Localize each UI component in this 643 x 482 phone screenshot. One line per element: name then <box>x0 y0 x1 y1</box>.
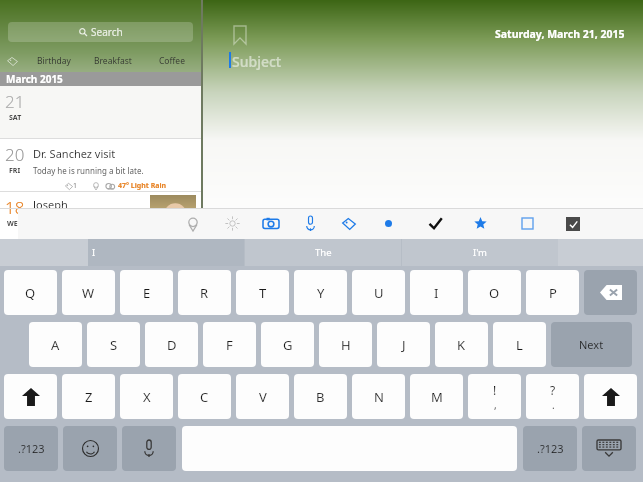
staticText: Today he is running a bit late. <box>33 165 144 176</box>
button[interactable]: H <box>319 322 372 367</box>
staticText: W <box>82 284 95 302</box>
staticText: X <box>143 388 151 406</box>
button[interactable]: I <box>410 270 463 315</box>
button[interactable]: Y <box>294 270 347 315</box>
button[interactable]: Star <box>465 208 495 239</box>
button[interactable]: Checkbox checked <box>558 208 588 239</box>
staticText: 1 <box>73 181 78 191</box>
button[interactable]: Dictation <box>122 426 176 471</box>
staticText: March 2015 <box>6 72 63 86</box>
staticText: P <box>549 284 557 302</box>
button[interactable]: ! <box>468 374 521 419</box>
button[interactable]: Shift <box>4 374 57 419</box>
button[interactable]: R <box>178 270 231 315</box>
staticText: I <box>434 284 439 302</box>
button[interactable]: Brightness <box>217 208 247 239</box>
button[interactable]: Dot <box>373 208 403 239</box>
staticText: B <box>316 388 325 406</box>
staticText: R <box>200 284 209 302</box>
staticText: Next <box>579 337 604 352</box>
button[interactable]: P <box>526 270 579 315</box>
button[interactable]: Check <box>420 208 450 239</box>
staticText: Breakfast <box>94 55 132 67</box>
staticText: Saturday, March 21, 2015 <box>495 27 625 41</box>
button[interactable]: Tag <box>334 208 364 239</box>
staticText: ! <box>493 382 497 398</box>
button[interactable]: Shift <box>584 374 637 419</box>
button[interactable]: U <box>352 270 405 315</box>
button[interactable]: E <box>120 270 173 315</box>
staticText: 20 <box>5 143 25 166</box>
button[interactable]: Location <box>178 208 208 239</box>
staticText: , <box>494 398 497 412</box>
button[interactable]: S <box>87 322 140 367</box>
button[interactable]: I'm <box>402 239 558 266</box>
button[interactable]: W <box>62 270 115 315</box>
staticText: Subject <box>232 52 282 71</box>
staticText: 21 <box>5 90 25 113</box>
staticText: K <box>457 336 466 354</box>
button[interactable]: Birthday <box>24 50 83 72</box>
staticText: N <box>374 388 384 406</box>
button[interactable]: M <box>410 374 463 419</box>
button[interactable]: O <box>468 270 521 315</box>
button[interactable]: D <box>145 322 198 367</box>
staticText: .?123 <box>18 441 45 456</box>
button[interactable]: A <box>29 322 82 367</box>
button[interactable]: Z <box>62 374 115 419</box>
button[interactable]: 21 <box>0 86 201 138</box>
button[interactable]: .?123 <box>523 426 577 471</box>
staticText: 47° Light Rain <box>118 181 167 191</box>
staticText: The <box>315 246 332 259</box>
button[interactable]: I <box>88 239 244 266</box>
staticText: S <box>110 336 118 354</box>
button[interactable]: B <box>294 374 347 419</box>
button[interactable]: C <box>178 374 231 419</box>
button[interactable]: F <box>203 322 256 367</box>
staticText: WED <box>7 219 23 229</box>
staticText: U <box>374 284 384 302</box>
staticText: Birthday <box>37 55 71 67</box>
button[interactable]: X <box>120 374 173 419</box>
button[interactable]: J <box>377 322 430 367</box>
button[interactable]: Microphone <box>295 208 325 239</box>
button[interactable]: Search <box>8 22 193 42</box>
button[interactable]: Hide keyboard <box>582 426 636 471</box>
button[interactable]: 18 <box>0 192 201 242</box>
button[interactable]: V <box>236 374 289 419</box>
staticText: J <box>402 336 406 354</box>
staticText: SAT <box>9 113 22 123</box>
button[interactable]: Checkbox empty <box>512 208 542 239</box>
button[interactable]: Backspace <box>584 270 637 315</box>
staticText: I <box>92 246 96 259</box>
button[interactable]: G <box>261 322 314 367</box>
staticText: 18 <box>5 196 25 219</box>
button[interactable]: Q <box>4 270 57 315</box>
staticText: Search <box>91 25 123 39</box>
button[interactable]: The <box>245 239 401 266</box>
button[interactable]: K <box>435 322 488 367</box>
button[interactable]: .?123 <box>4 426 58 471</box>
button[interactable]: Camera <box>256 208 286 239</box>
button[interactable]: Breakfast <box>83 50 142 72</box>
staticText: V <box>259 388 267 406</box>
button[interactable]: Emoji <box>63 426 117 471</box>
staticText: FRI <box>9 166 21 176</box>
staticText: O <box>489 284 500 302</box>
staticText: .?123 <box>537 441 564 456</box>
button[interactable]: ? <box>526 374 579 419</box>
button[interactable]: N <box>352 374 405 419</box>
button[interactable]: 20 <box>0 139 201 191</box>
button[interactable]: Coffee <box>142 50 201 72</box>
staticText: Dr. Sanchez visit <box>33 146 116 161</box>
button[interactable]: L <box>493 322 546 367</box>
staticText: A <box>51 336 60 354</box>
button[interactable]: Next <box>551 322 632 367</box>
button[interactable]: T <box>236 270 289 315</box>
staticText: I'm <box>473 246 487 259</box>
